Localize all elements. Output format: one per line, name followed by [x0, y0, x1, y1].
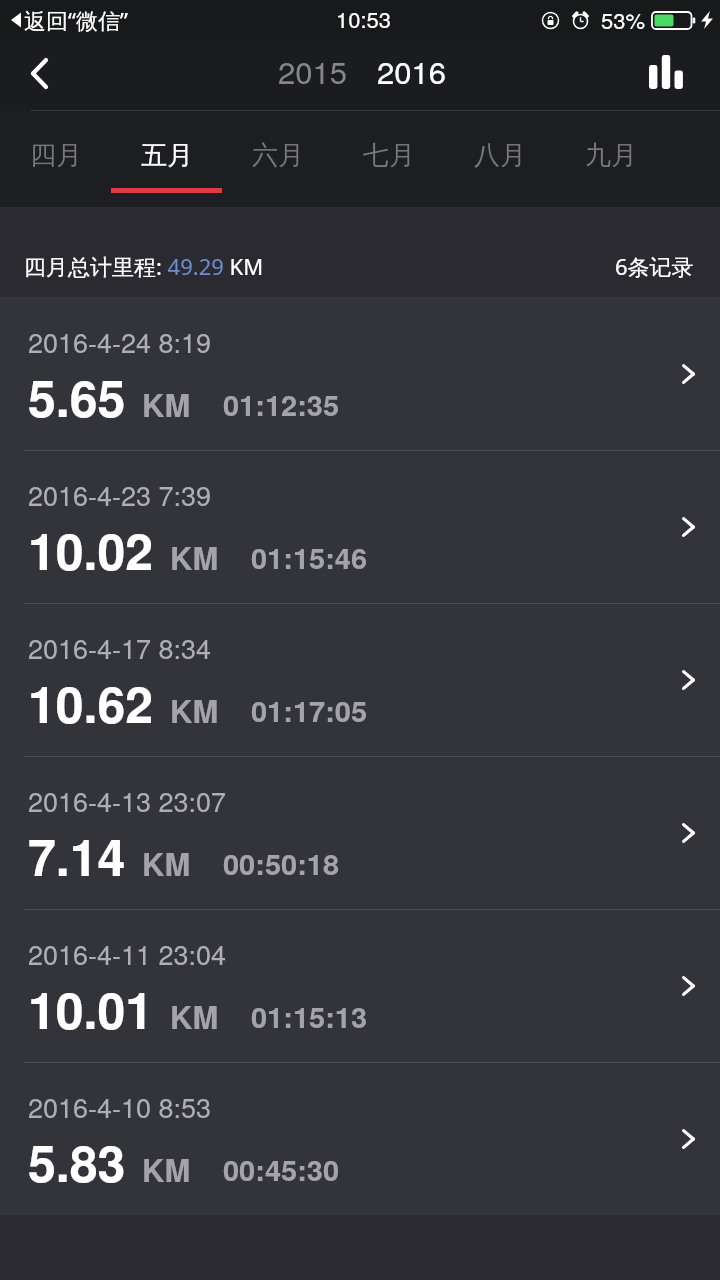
staticText: KM — [170, 688, 219, 732]
staticText: KM — [142, 382, 191, 426]
staticText: 10.01 — [28, 973, 154, 1045]
button[interactable]: 2016-4-10 8:53 — [0, 1062, 720, 1215]
button[interactable]: 2016-4-13 23:07 — [0, 756, 720, 909]
button[interactable]: 2016 — [371, 42, 452, 98]
staticText: 2016 — [377, 48, 446, 92]
button[interactable]: 五月 — [111, 111, 222, 198]
staticText: 53% — [601, 4, 646, 36]
staticText: 2015 — [278, 48, 347, 92]
staticText: 六月 — [252, 139, 304, 172]
staticText: 五月 — [141, 139, 193, 172]
staticText: 九月 — [585, 139, 637, 172]
staticText: 00:45:30 — [223, 1148, 340, 1190]
button[interactable]: 八月 — [444, 111, 555, 198]
staticText: 2016-4-23 7:39 — [28, 475, 212, 514]
staticText: 2016-4-13 23:07 — [28, 781, 227, 820]
staticText: 2016-4-11 23:04 — [28, 934, 227, 973]
staticText: 2016-4-24 8:19 — [28, 322, 212, 361]
button[interactable]: 2016-4-24 8:19 — [0, 297, 720, 450]
staticText: KM — [142, 841, 191, 885]
staticText: KM — [170, 535, 219, 579]
staticText: 八月 — [474, 139, 526, 172]
staticText: 01:15:13 — [251, 995, 368, 1037]
staticText: 2016-4-10 8:53 — [28, 1087, 212, 1126]
staticText: 四月总计里程: 49.29 KM — [24, 251, 264, 281]
staticText: 七月 — [363, 139, 415, 172]
staticText: KM — [170, 994, 219, 1038]
staticText: 7.14 — [28, 820, 126, 892]
button[interactable]: 2016-4-17 8:34 — [0, 603, 720, 756]
staticText: 6条记录 — [615, 251, 694, 281]
staticText: 01:12:35 — [223, 383, 340, 425]
button[interactable]: 四月 — [0, 111, 111, 198]
button[interactable]: 2015 — [272, 42, 353, 98]
button[interactable]: 2016-4-23 7:39 — [0, 450, 720, 603]
button[interactable]: 返回“微信” — [11, 5, 128, 35]
staticText: 返回“微信” — [24, 5, 128, 35]
button[interactable]: 七月 — [333, 111, 444, 198]
button[interactable]: 九月 — [555, 111, 666, 198]
button[interactable]: Statistics — [615, 40, 720, 111]
staticText: 10.62 — [28, 667, 154, 739]
button[interactable]: Back — [0, 40, 78, 111]
staticText: KM — [142, 1147, 191, 1191]
button[interactable]: 2016-4-11 23:04 — [0, 909, 720, 1062]
staticText: 5.83 — [28, 1126, 126, 1198]
staticText: 2016-4-17 8:34 — [28, 628, 212, 667]
staticText: 5.65 — [28, 361, 126, 433]
staticText: 01:15:46 — [251, 536, 368, 578]
staticText: 四月 — [30, 139, 82, 172]
staticText: 10.02 — [28, 514, 154, 586]
staticText: 00:50:18 — [223, 842, 340, 884]
button[interactable]: 六月 — [222, 111, 333, 198]
staticText: 01:17:05 — [251, 689, 368, 731]
staticText: 10:53 — [336, 3, 392, 35]
